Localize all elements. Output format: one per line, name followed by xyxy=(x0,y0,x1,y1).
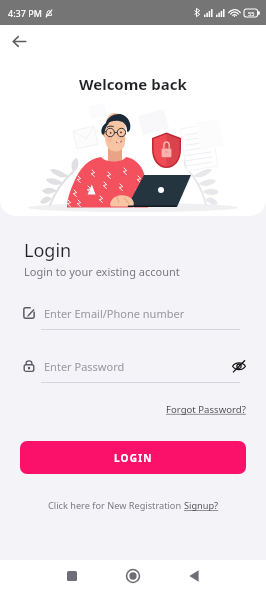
button[interactable]: Home xyxy=(111,562,155,590)
staticText: Login xyxy=(24,238,72,263)
button[interactable]: Back xyxy=(172,562,216,590)
button[interactable]: LOGIN xyxy=(20,441,246,474)
staticText: 4:37 PM xyxy=(8,7,42,19)
button[interactable]: Back xyxy=(4,26,34,56)
staticText: Enter Email/Phone number xyxy=(44,306,185,320)
staticText: Login to your existing account xyxy=(24,264,180,279)
button[interactable]: Signup? xyxy=(184,499,219,512)
staticText: 55 xyxy=(248,10,255,17)
staticText: LOGIN xyxy=(114,451,153,465)
button[interactable]: Enter Password xyxy=(20,359,246,383)
staticText: Enter Password xyxy=(44,359,125,373)
staticText: Click here for New Registration xyxy=(48,499,184,512)
button[interactable]: Forgot Password? xyxy=(166,403,246,416)
button[interactable]: Recent apps xyxy=(50,562,94,590)
staticText: Welcome back xyxy=(79,74,187,94)
button[interactable]: Enter Email/Phone number xyxy=(20,306,246,330)
